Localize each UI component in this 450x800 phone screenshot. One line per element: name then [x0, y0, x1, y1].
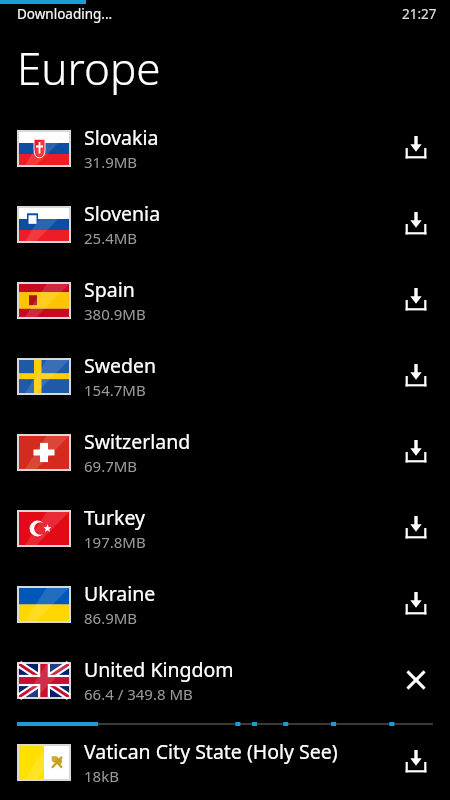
staticText: Sweden [84, 352, 157, 379]
staticText: 31.9MB [84, 152, 138, 172]
button[interactable]: Switzerland [0, 421, 450, 497]
button[interactable]: Download [390, 122, 442, 174]
staticText: Europe [17, 38, 161, 98]
button[interactable]: Turkey [0, 497, 450, 573]
staticText: 86.9MB [84, 608, 138, 628]
staticText: 154.7MB [84, 380, 146, 400]
button[interactable]: Download [390, 274, 442, 326]
staticText: 69.7MB [84, 456, 138, 476]
staticText: Slovenia [84, 200, 161, 227]
button[interactable]: Download [390, 350, 442, 402]
button[interactable]: Cancel download [390, 654, 442, 706]
staticText: 197.8MB [84, 532, 146, 552]
staticText: Switzerland [84, 428, 191, 455]
button[interactable]: Download [390, 502, 442, 554]
button[interactable]: Download [390, 736, 442, 788]
button[interactable]: Ukraine [0, 573, 450, 649]
staticText: United Kingdom [84, 656, 234, 683]
staticText: Turkey [84, 504, 145, 531]
staticText: 25.4MB [84, 228, 138, 248]
staticText: Ukraine [84, 580, 156, 607]
staticText: Vatican City State (Holy See) [84, 738, 338, 765]
staticText: 21:27 [402, 5, 437, 23]
staticText: 380.9MB [84, 304, 146, 324]
staticText: Downloading... [17, 5, 113, 23]
staticText: 18kB [84, 766, 119, 786]
button[interactable]: Slovenia [0, 193, 450, 269]
staticText: Spain [84, 276, 135, 303]
button[interactable]: Download [390, 578, 442, 630]
button[interactable]: Slovakia [0, 117, 450, 193]
button[interactable]: Download [390, 426, 442, 478]
button[interactable]: Sweden [0, 345, 450, 421]
staticText: Slovakia [84, 124, 159, 151]
button[interactable]: Spain [0, 269, 450, 345]
staticText: 66.4 / 349.8 MB [84, 684, 193, 704]
button[interactable]: Download [390, 198, 442, 250]
button[interactable]: United Kingdom [0, 649, 450, 731]
button[interactable]: Vatican City State (Holy See) [0, 731, 450, 800]
